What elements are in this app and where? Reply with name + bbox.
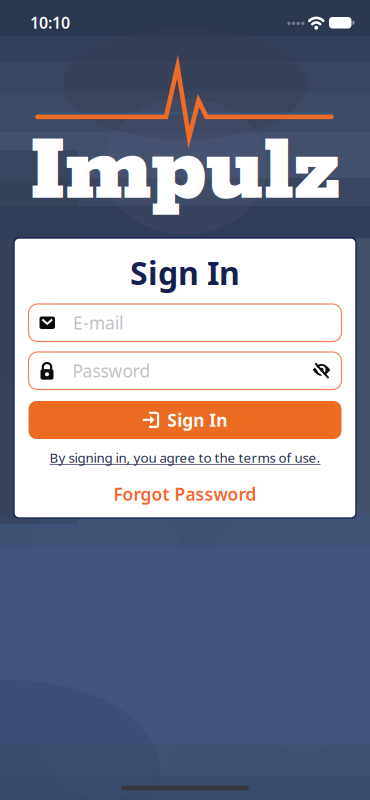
button[interactable]: Show password xyxy=(312,363,341,378)
staticText: 10:10 xyxy=(30,12,70,33)
staticText: E-mail xyxy=(73,311,123,334)
button[interactable]: By signing in, you agree to the terms of… xyxy=(14,447,356,467)
staticText: Password xyxy=(72,359,150,382)
button[interactable]: Sign In xyxy=(28,401,341,439)
staticText: Sign In xyxy=(167,408,227,431)
staticText: Forgot Password xyxy=(113,482,256,505)
button[interactable]: Forgot Password xyxy=(14,484,356,504)
staticText: By signing in, you agree to the terms of… xyxy=(49,449,320,466)
staticText: Sign In xyxy=(130,251,240,294)
staticText: Impulz xyxy=(29,115,340,230)
